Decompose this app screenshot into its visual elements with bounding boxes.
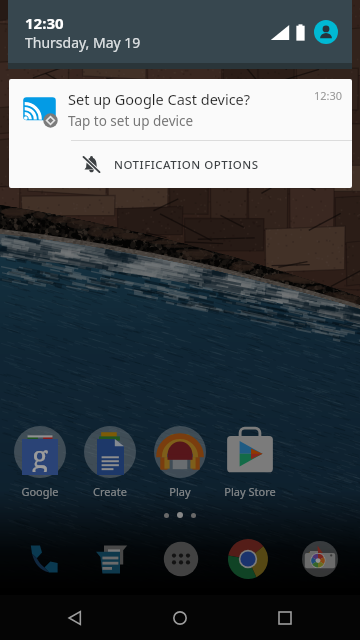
button[interactable]: Phone <box>12 533 76 585</box>
staticText: Play Store <box>224 484 276 499</box>
staticText: Create <box>93 484 127 499</box>
button[interactable]: Home <box>150 595 210 640</box>
button[interactable]: Camera <box>288 533 352 585</box>
staticText: 12:30 <box>25 13 64 33</box>
button[interactable]: NOTIFICATION OPTIONS <box>9 141 352 188</box>
button[interactable]: Set up Google Cast device? <box>9 79 352 140</box>
staticText: Thursday, May 19 <box>25 33 141 52</box>
staticText: Set up Google Cast device? <box>68 89 251 109</box>
staticText: NOTIFICATION OPTIONS <box>114 157 259 173</box>
button[interactable]: Back <box>45 595 105 640</box>
button[interactable]: All apps <box>149 533 213 585</box>
button[interactable]: Messages <box>80 533 144 585</box>
button[interactable]: Play Store <box>215 426 285 499</box>
button[interactable]: g <box>5 426 75 499</box>
staticText: Play <box>169 484 191 499</box>
button[interactable]: Recent apps <box>255 595 315 640</box>
button[interactable]: Chrome <box>216 533 280 585</box>
button[interactable]: User profile <box>314 20 338 44</box>
button[interactable]: Create <box>75 426 145 499</box>
staticText: 12:30 <box>314 88 343 103</box>
staticText: g <box>32 436 49 472</box>
staticText: Google <box>21 484 59 499</box>
staticText: Tap to set up device <box>68 112 194 130</box>
button[interactable]: Play <box>145 426 215 499</box>
